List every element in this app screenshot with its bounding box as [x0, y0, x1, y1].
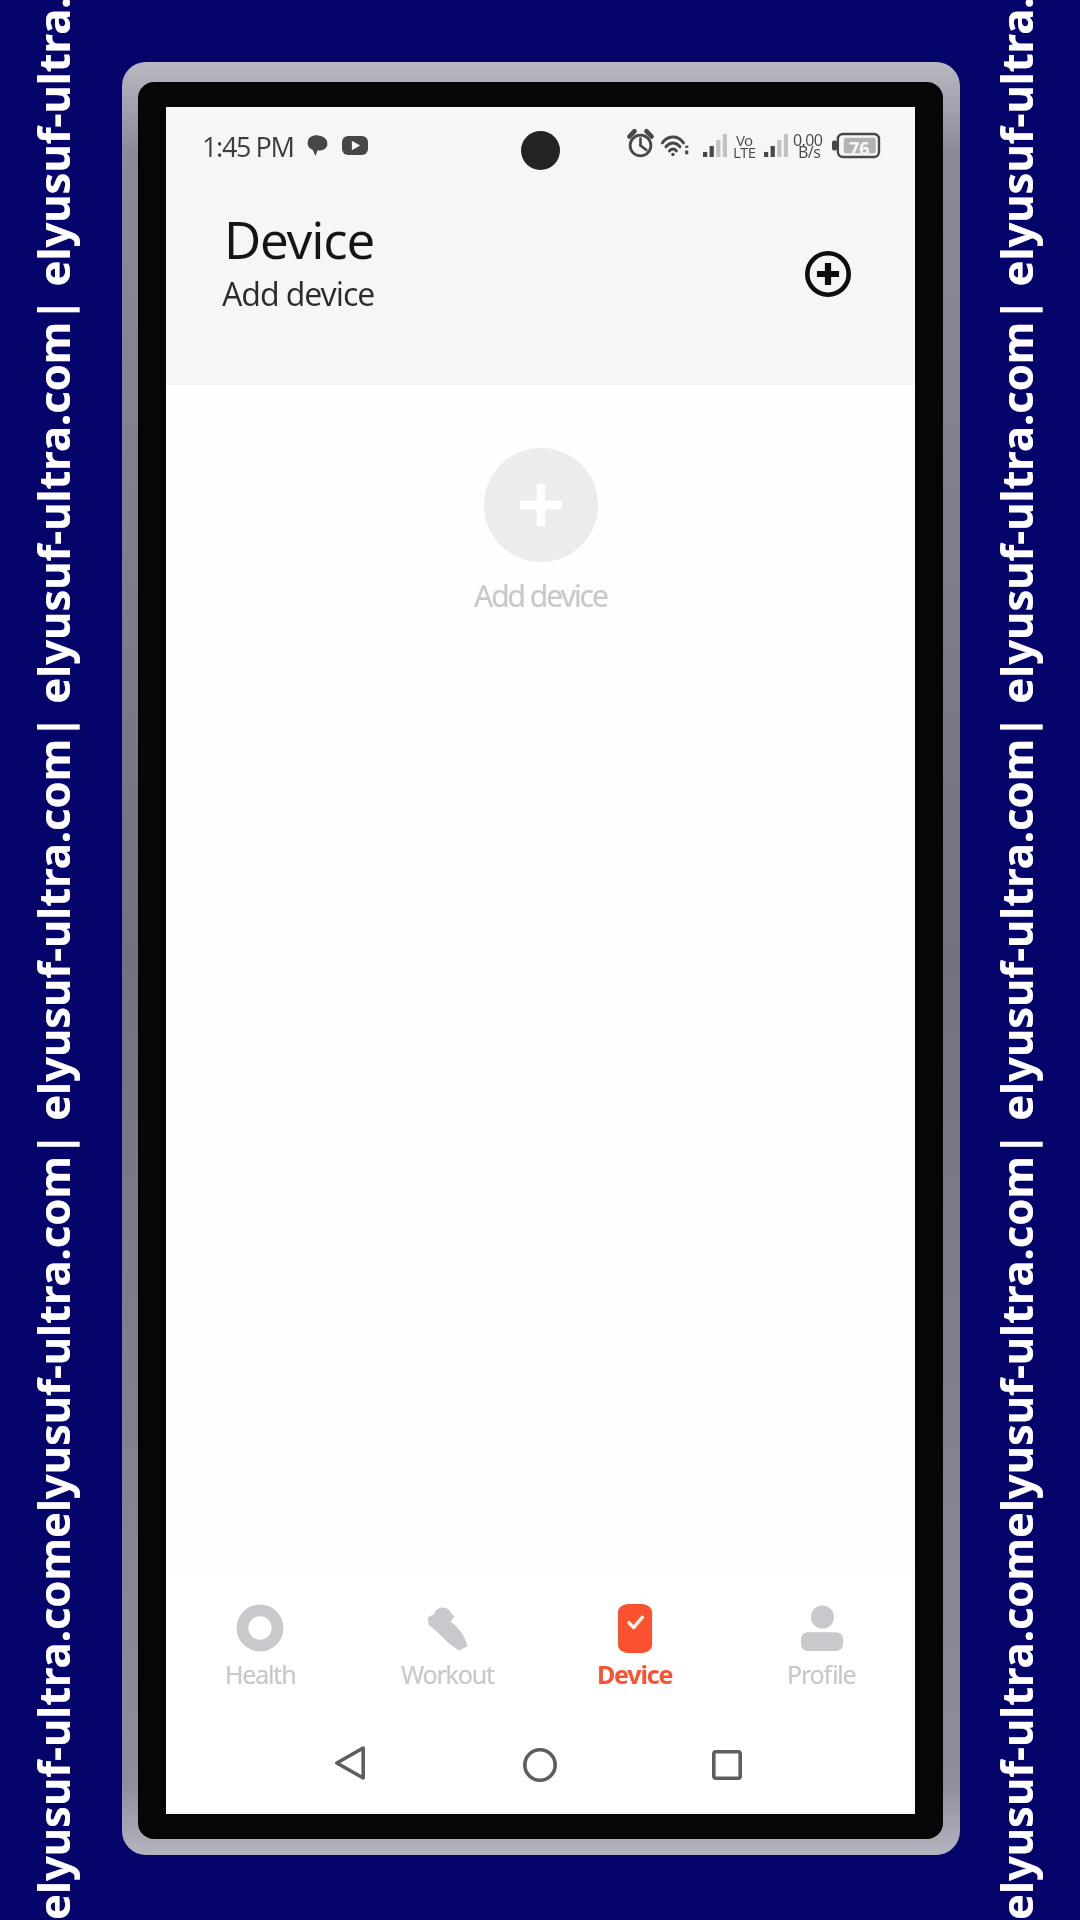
- staticText: LTE: [733, 142, 756, 162]
- staticText: Add device: [474, 575, 607, 616]
- button[interactable]: Back: [316, 1729, 384, 1797]
- staticText: Health: [225, 1657, 296, 1691]
- button[interactable]: Home: [506, 1731, 574, 1799]
- button[interactable]: Add device: [800, 246, 856, 302]
- staticText: B/s: [798, 141, 821, 163]
- staticText: Profile: [787, 1657, 856, 1691]
- staticText: 76: [849, 136, 870, 161]
- button[interactable]: Health: [166, 1574, 354, 1706]
- staticText: 1:45 PM: [202, 128, 294, 165]
- staticText: 0.00: [793, 129, 823, 151]
- staticText: Device: [597, 1657, 673, 1691]
- button[interactable]: Recents: [693, 1731, 761, 1799]
- staticText: Device: [224, 204, 375, 273]
- staticText: Add device: [222, 272, 375, 316]
- button[interactable]: Profile: [728, 1574, 915, 1706]
- staticText: elyusuf-ultra.comelyusuf-ultra.com| elyu…: [986, 0, 1045, 1920]
- staticText: Vo: [736, 130, 753, 150]
- staticText: Workout: [401, 1657, 494, 1691]
- button[interactable]: Workout: [354, 1574, 541, 1706]
- staticText: elyusuf-ultra.comelyusuf-ultra.com| elyu…: [23, 0, 82, 1920]
- button[interactable]: Device: [541, 1574, 728, 1706]
- button[interactable]: Add device: [484, 448, 598, 562]
